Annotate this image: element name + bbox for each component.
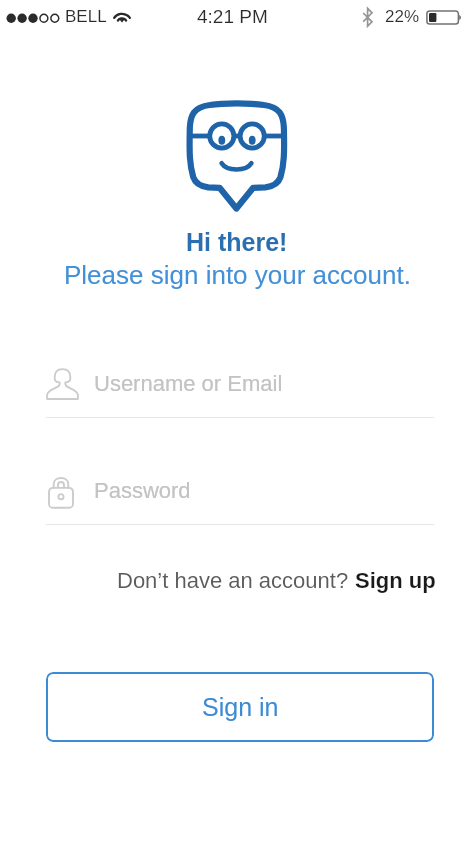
button[interactable]: Sign up: [355, 568, 436, 593]
button[interactable]: Password: [46, 465, 434, 525]
other: Bluetooth: [361, 7, 375, 29]
staticText: 22%: [385, 7, 420, 26]
staticText: BELL: [65, 7, 107, 26]
staticText: Please sign into your account.: [64, 260, 411, 289]
staticText: 4:21 PM: [197, 6, 268, 27]
staticText: Sign up: [355, 568, 436, 593]
staticText: Password: [94, 478, 191, 503]
button[interactable]: Sign in: [46, 672, 434, 742]
staticText: Sign in: [202, 693, 279, 721]
staticText: Hi there!: [186, 228, 288, 256]
button[interactable]: Username or Email: [46, 358, 434, 418]
staticText: Username or Email: [94, 371, 283, 396]
staticText: Don’t have an account?: [117, 568, 355, 593]
